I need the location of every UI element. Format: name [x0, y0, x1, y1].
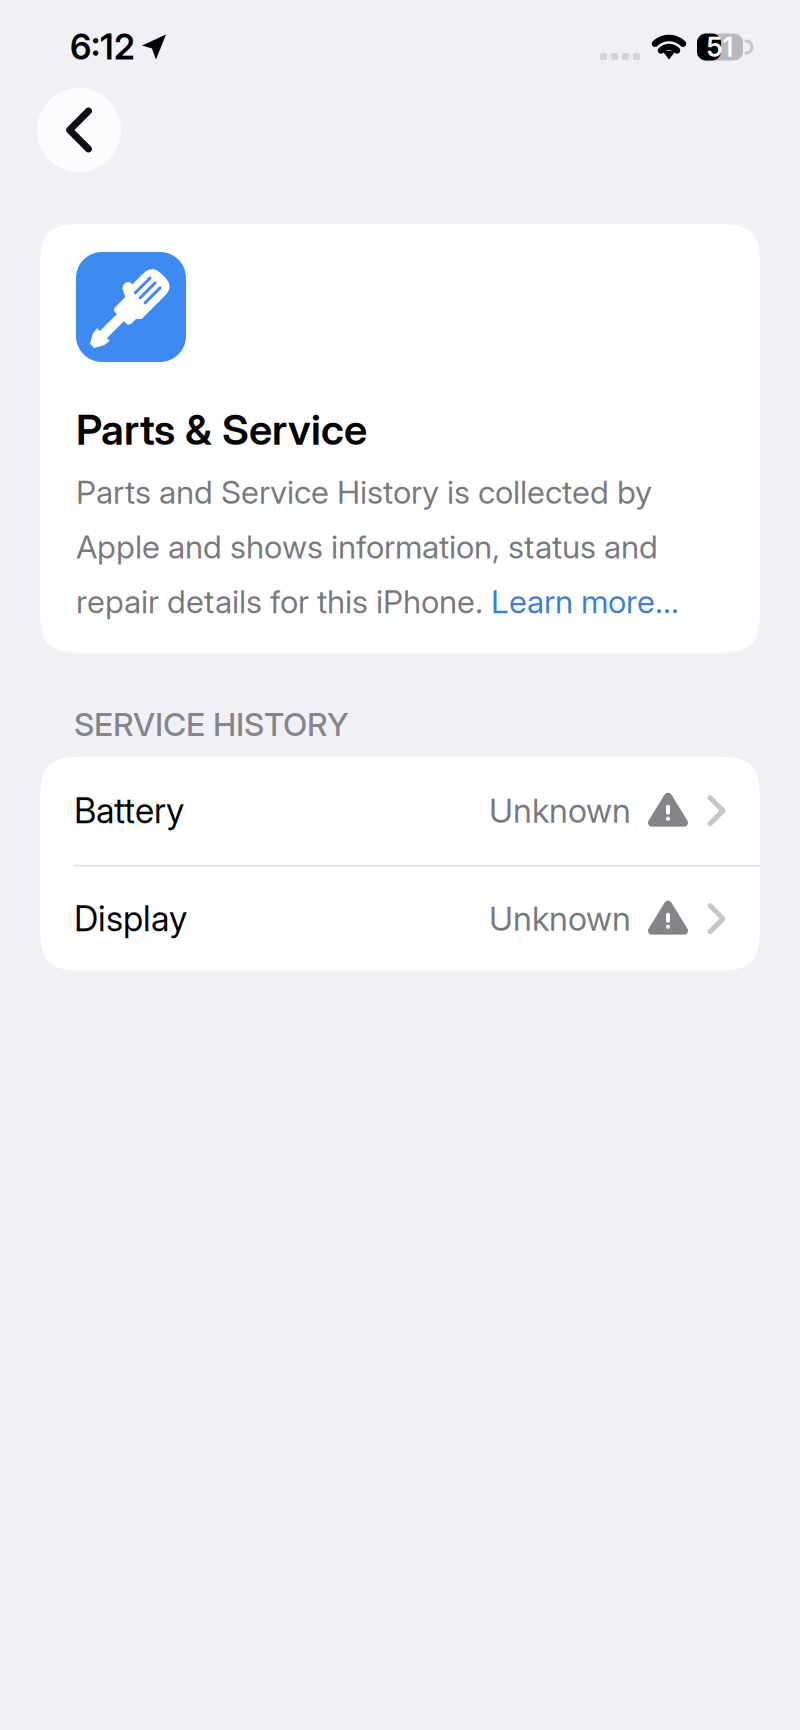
staticText: Learn more...	[491, 582, 679, 621]
button[interactable]: Learn more...	[491, 582, 679, 621]
staticText: Display	[74, 898, 187, 940]
staticText: Battery	[74, 790, 184, 832]
staticText: Parts & Service	[76, 404, 367, 455]
staticText: 6:12	[70, 26, 135, 68]
staticText: SERVICE HISTORY	[74, 705, 349, 744]
button[interactable]: Back	[37, 88, 121, 172]
staticText: Apple and shows information, status and	[76, 527, 658, 566]
staticText: 51	[706, 31, 733, 63]
staticText: repair details for this iPhone.	[76, 582, 491, 621]
staticText: Parts and Service History is collected b…	[76, 473, 652, 511]
button[interactable]: Display	[40, 867, 760, 971]
staticText: Unknown	[489, 790, 631, 831]
button[interactable]: Battery	[40, 757, 760, 865]
staticText: Unknown	[489, 898, 631, 939]
